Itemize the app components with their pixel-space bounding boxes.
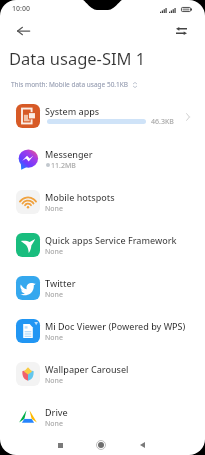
button[interactable]: Mi Doc Viewer (Powered by WPS) [0,309,205,352]
button[interactable]: Sort order [171,21,191,41]
staticText: None [45,333,63,343]
button[interactable]: Quick apps Service Framework [0,223,205,266]
button[interactable]: Mobile hotspots [0,180,205,223]
staticText: 11.2MB [51,161,76,171]
staticText: Messenger [45,148,93,160]
button[interactable]: Twitter [0,266,205,309]
staticText: 46.3KB [151,117,174,127]
staticText: Wallpaper Carousel [45,363,129,375]
button[interactable]: Home [92,436,110,454]
staticText: This month: Mobile data usage 50.1KB [11,80,129,89]
button[interactable]: Drive [0,395,205,438]
button[interactable]: Wallpaper Carousel [0,352,205,395]
staticText: Drive [45,406,68,418]
staticText: None [45,419,63,429]
staticText: Mi Doc Viewer (Powered by WPS) [45,320,186,332]
staticText: None [45,376,63,386]
staticText: Mobile hotspots [45,191,115,203]
button[interactable]: Messenger [0,137,205,180]
staticText: Quick apps Service Framework [45,234,177,246]
button[interactable]: Recents [51,436,69,454]
button[interactable]: Back [133,436,151,454]
staticText: Data usage-SIM 1 [9,47,146,69]
staticText: None [45,290,63,300]
button[interactable]: Back [11,19,35,43]
button[interactable]: System apps [0,94,205,137]
staticText: None [45,204,63,214]
staticText: 10:00 [12,4,30,14]
staticText: System apps [45,105,100,117]
staticText: None [45,247,63,257]
staticText: Twitter [45,277,76,289]
